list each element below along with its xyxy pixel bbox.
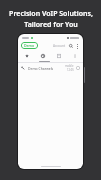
button[interactable]: Keypad [67,50,83,62]
staticText: 12:05 [67,68,74,72]
button[interactable]: Contacts [51,50,67,62]
button[interactable]: Favourites [18,50,35,62]
button[interactable]: More options [74,43,80,49]
button[interactable]: Demo [21,42,38,49]
button[interactable]: Call details [76,66,80,70]
staticText: Precision VoIP Solutions, [9,9,93,19]
staticText: Demo [24,43,35,48]
staticText: Tailored for You [24,20,78,30]
staticText: mobile [65,64,74,68]
button[interactable]: Search [68,43,74,49]
staticText: Demo Channels [28,66,54,71]
button[interactable]: Recents [35,50,51,62]
button[interactable]: Demo Channels [18,63,83,73]
staticText: Account [53,44,66,48]
